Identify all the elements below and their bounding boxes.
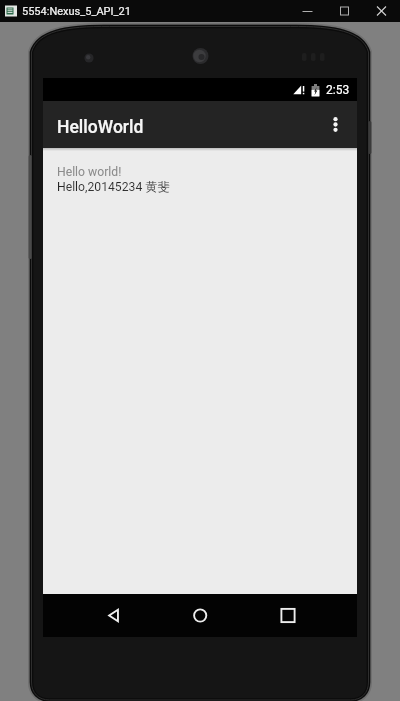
staticText: Hello,20145234 黄斐 — [57, 179, 170, 194]
button[interactable]: Back — [70, 594, 157, 637]
button[interactable]: Home — [157, 594, 244, 637]
staticText: Hello world! — [57, 165, 122, 179]
staticText: 2:53 — [326, 83, 350, 97]
button[interactable]: Maximize — [326, 0, 363, 22]
button[interactable]: More options — [315, 101, 356, 148]
button[interactable]: Close — [363, 0, 400, 22]
staticText: HelloWorld — [57, 117, 144, 138]
staticText: 5554:Nexus_5_API_21 — [22, 5, 131, 18]
button[interactable]: Minimize — [289, 0, 326, 22]
button[interactable]: Recent apps — [244, 594, 331, 637]
